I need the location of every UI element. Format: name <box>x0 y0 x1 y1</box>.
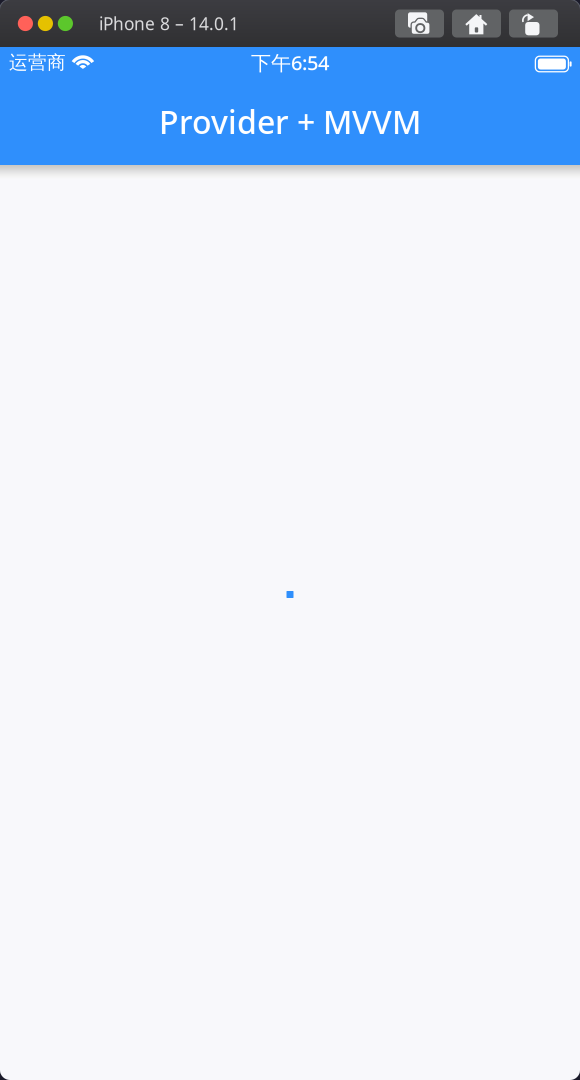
button[interactable]: Rotate <box>509 9 558 37</box>
button[interactable]: Home <box>452 9 501 37</box>
staticText: iPhone 8 – 14.0.1 <box>99 12 239 35</box>
button[interactable]: Close window <box>18 16 33 31</box>
button[interactable]: Take Screenshot <box>395 9 444 37</box>
staticText: Provider + MVVM <box>159 100 421 143</box>
staticText: 运营商 <box>9 51 66 74</box>
staticText: 下午6:54 <box>251 49 329 76</box>
button[interactable]: Minimize window <box>38 16 53 31</box>
button[interactable]: Zoom window <box>58 16 73 31</box>
